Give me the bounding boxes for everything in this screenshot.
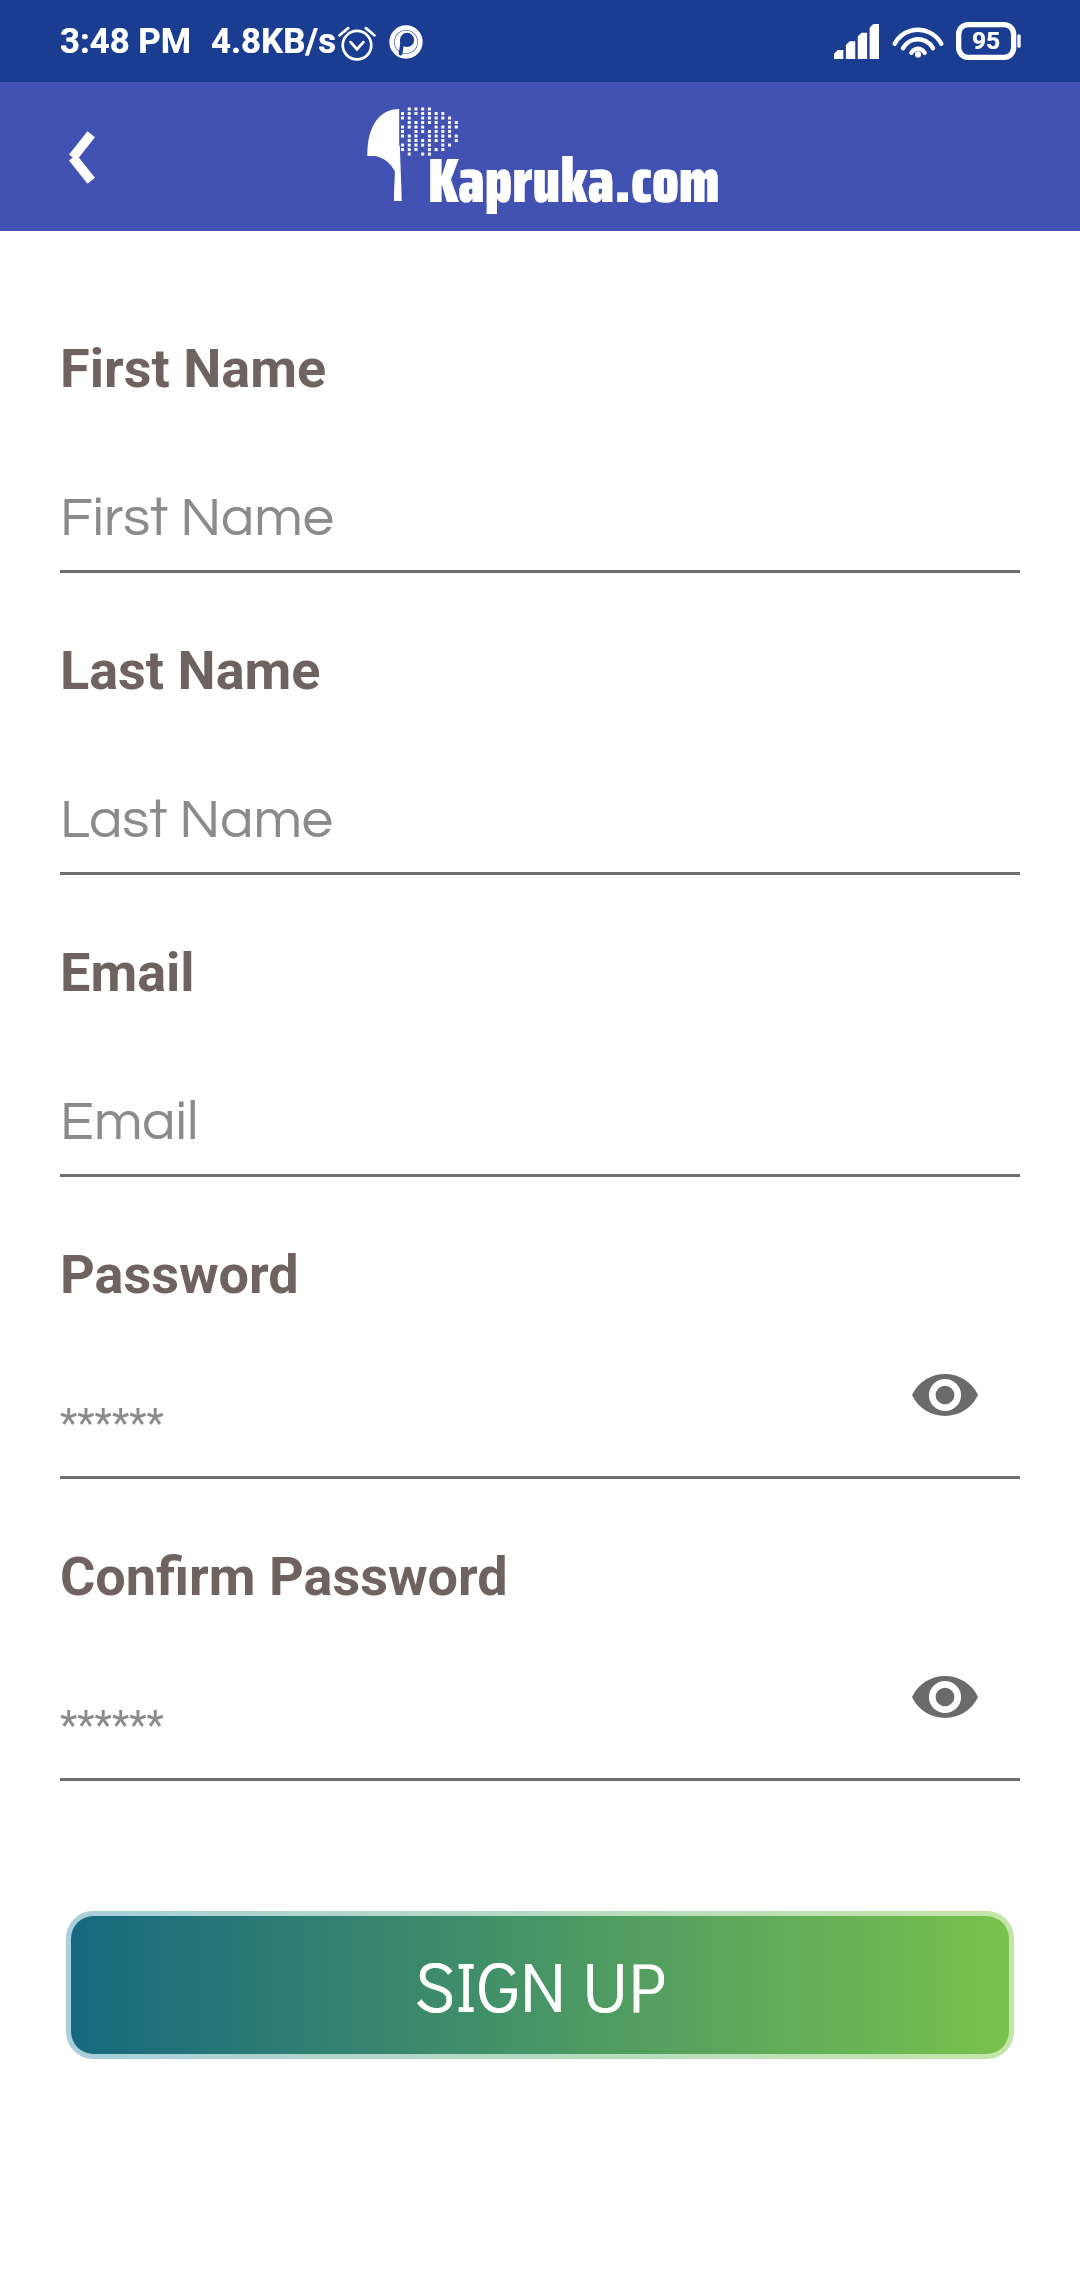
staticText: ****** xyxy=(60,1702,164,1749)
button[interactable]: Show password xyxy=(903,1359,987,1431)
staticText: First Name xyxy=(60,337,327,388)
staticText: 4.8KB/s xyxy=(211,21,337,62)
staticText: First Name xyxy=(60,489,334,546)
button[interactable]: Email xyxy=(0,943,1080,1245)
button[interactable]: First Name xyxy=(0,339,1080,641)
staticText: 95 xyxy=(972,26,1001,55)
button[interactable]: Back xyxy=(22,97,142,217)
staticText: Last Name xyxy=(60,639,321,690)
staticText: Last Name xyxy=(60,791,333,848)
staticText: Email xyxy=(60,1093,199,1150)
staticText: Confirm Password xyxy=(60,1545,508,1596)
button[interactable]: Password xyxy=(0,1245,1080,1547)
staticText: SIGN UP xyxy=(414,1939,666,2031)
staticText: ****** xyxy=(60,1400,164,1447)
button[interactable]: SIGN UP xyxy=(71,1916,1009,2054)
button[interactable]: Confirm Password xyxy=(0,1547,1080,1849)
button[interactable]: Last Name xyxy=(0,641,1080,943)
staticText: Email xyxy=(60,941,195,992)
staticText: Kapruka.com xyxy=(428,133,720,228)
staticText: Password xyxy=(60,1243,299,1294)
staticText: 3:48 PM xyxy=(60,21,192,62)
button[interactable]: Show password xyxy=(903,1661,987,1733)
